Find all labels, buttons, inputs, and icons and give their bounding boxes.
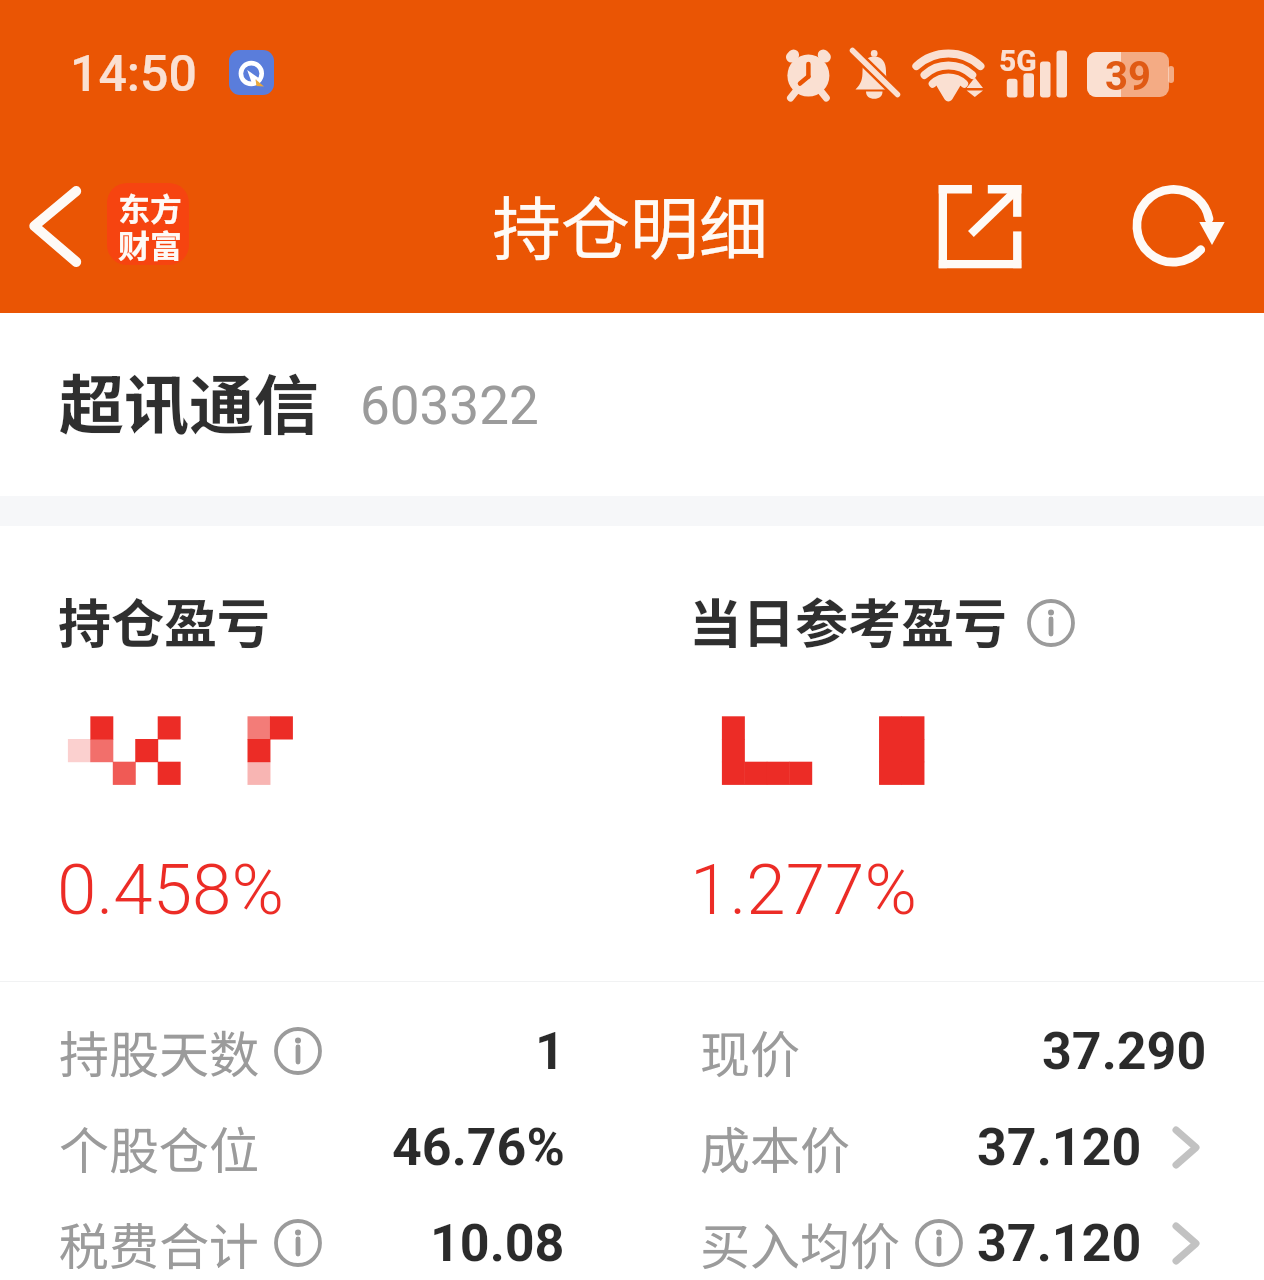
staticText: 37.290 (1042, 1021, 1207, 1082)
button[interactable]: 现价 (700, 1003, 1207, 1099)
staticText: 买入均价 (700, 1207, 900, 1279)
staticText: 37.120 (977, 1213, 1142, 1274)
button[interactable]: Share (934, 180, 1026, 272)
staticText: 1 (535, 1021, 565, 1082)
button[interactable]: 成本价 (700, 1099, 1200, 1195)
button[interactable]: Refresh (1129, 180, 1229, 280)
staticText: 现价 (700, 1015, 800, 1087)
staticText: 46.76% (392, 1117, 565, 1178)
staticText: 超讯通信 (59, 354, 320, 448)
staticText: 10.08 (430, 1213, 565, 1274)
staticText: 财富 (118, 221, 183, 265)
staticText: 5G (999, 43, 1037, 78)
button[interactable]: 持股天数 (59, 1003, 565, 1099)
button[interactable]: Back (14, 181, 104, 271)
button[interactable]: Quick search (229, 50, 274, 95)
staticText: 39 (1105, 53, 1151, 100)
staticText: 东方 (118, 184, 183, 230)
button[interactable]: East Money (107, 183, 189, 265)
staticText: 当日参考盈亏 (689, 582, 1007, 659)
staticText: 税费合计 (59, 1207, 259, 1279)
staticText: 个股仓位 (59, 1111, 259, 1183)
staticText: 成本价 (700, 1111, 850, 1183)
staticText: 0.458% (57, 848, 284, 931)
button[interactable]: 个股仓位 (59, 1099, 565, 1195)
staticText: 持仓明细 (492, 174, 768, 274)
staticText: 持仓盈亏 (58, 582, 270, 659)
staticText: 1.277% (690, 848, 917, 931)
staticText: 37.120 (977, 1117, 1142, 1178)
button[interactable]: 买入均价 (700, 1195, 1200, 1280)
staticText: 14:50 (70, 45, 197, 104)
staticText: 持股天数 (59, 1015, 259, 1087)
button[interactable]: 税费合计 (59, 1195, 565, 1280)
staticText: 603322 (360, 375, 539, 437)
